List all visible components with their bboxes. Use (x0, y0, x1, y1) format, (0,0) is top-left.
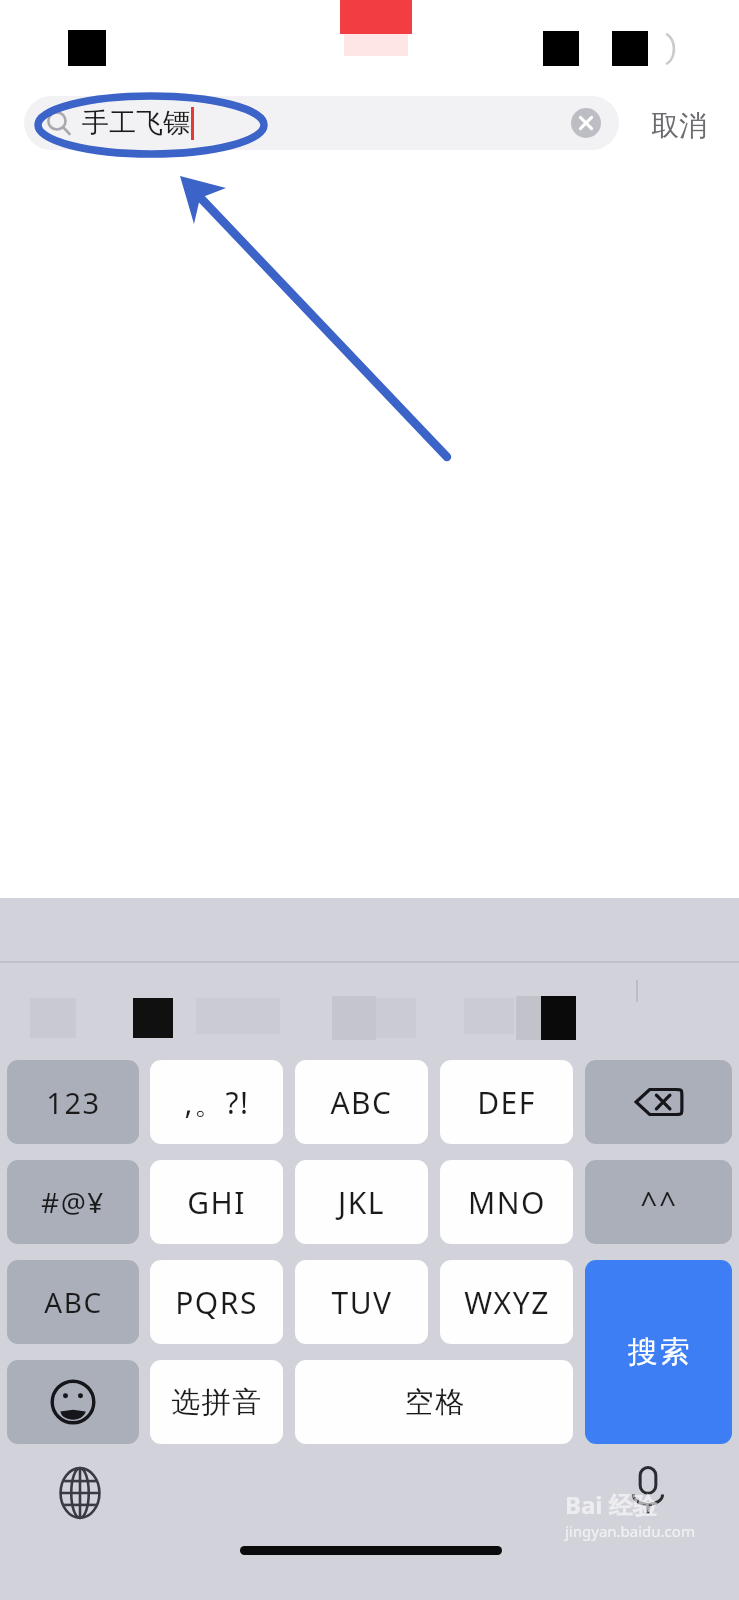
staticText: TUV (331, 1282, 393, 1323)
button[interactable]: ABC (7, 1260, 139, 1344)
button[interactable]: #@¥ (7, 1160, 139, 1244)
staticText: ^^ (640, 1182, 678, 1223)
staticText: JKL (338, 1182, 385, 1223)
button[interactable]: JKL (295, 1160, 428, 1244)
button[interactable]: MNO (440, 1160, 573, 1244)
staticText: GHI (187, 1182, 246, 1223)
button[interactable]: 取消 (633, 98, 725, 152)
button[interactable]: ABC (295, 1060, 428, 1144)
staticText: DEF (477, 1082, 536, 1123)
staticText: PQRS (175, 1282, 258, 1323)
button[interactable]: Clear text (569, 106, 603, 140)
button[interactable]: ^^ (585, 1160, 732, 1244)
button[interactable]: Voice input (612, 1454, 684, 1526)
staticText: MNO (468, 1182, 546, 1223)
button[interactable]: 选拼音 (150, 1360, 283, 1444)
button[interactable]: 手工飞镖 (24, 96, 619, 150)
staticText: ABC (330, 1082, 393, 1123)
button[interactable]: 123 (7, 1060, 139, 1144)
staticText: 搜索 (627, 1333, 691, 1371)
staticText: 123 (46, 1083, 101, 1122)
staticText: 手工飞镖 (82, 106, 190, 140)
staticText: ,。?! (184, 1082, 250, 1123)
button[interactable]: WXYZ (440, 1260, 573, 1344)
button[interactable]: PQRS (150, 1260, 283, 1344)
staticText: WXYZ (464, 1282, 550, 1323)
staticText: ABC (44, 1283, 103, 1321)
button[interactable]: 空格 (295, 1360, 573, 1444)
button[interactable]: DEF (440, 1060, 573, 1144)
button[interactable]: ,。?! (150, 1060, 283, 1144)
button[interactable]: Emoji (7, 1360, 139, 1444)
staticText: Bai 经验 (565, 1488, 657, 1521)
button[interactable]: GHI (150, 1160, 283, 1244)
staticText: 选拼音 (171, 1384, 263, 1421)
staticText: #@¥ (41, 1183, 105, 1221)
button[interactable]: 搜索 (585, 1260, 732, 1444)
button[interactable]: Backspace (585, 1060, 732, 1144)
staticText: jingyan.baidu.com (565, 1521, 695, 1541)
button[interactable]: Switch language (45, 1458, 115, 1528)
staticText: 取消 (651, 108, 707, 143)
button[interactable]: TUV (295, 1260, 428, 1344)
staticText: 空格 (404, 1384, 465, 1421)
